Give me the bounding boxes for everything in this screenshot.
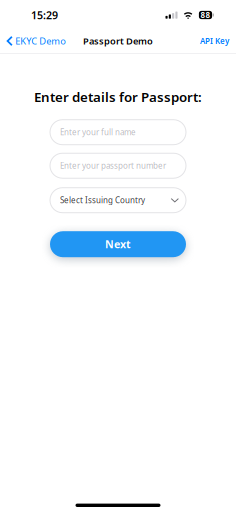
button[interactable]: API Key — [193, 31, 236, 51]
button[interactable]: Enter your full name — [50, 120, 186, 145]
staticText: API Key — [200, 36, 229, 46]
staticText: EKYC Demo — [15, 35, 66, 47]
button[interactable]: Enter your passport number — [50, 153, 186, 178]
staticText: Enter details for Passport: — [34, 88, 202, 106]
staticText: 15:29 — [31, 8, 58, 22]
staticText: Enter your full name — [60, 127, 136, 137]
staticText: Enter your passport number — [60, 160, 166, 171]
button[interactable]: EKYC Demo — [0, 30, 72, 52]
staticText: Passport Demo — [83, 35, 153, 47]
staticText: Next — [105, 237, 131, 251]
button[interactable]: Next — [50, 231, 186, 257]
staticText: 88 — [200, 10, 210, 20]
button[interactable]: Select Issuing Country — [50, 188, 186, 213]
staticText: Select Issuing Country — [60, 195, 145, 205]
